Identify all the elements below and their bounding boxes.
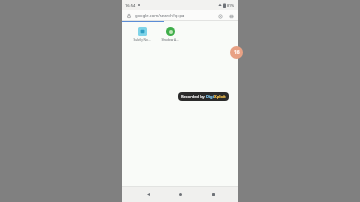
- button[interactable]: Floating badge: [230, 46, 243, 59]
- staticText: Shadow Art…: [161, 38, 179, 42]
- button[interactable]: Site information: [125, 12, 133, 20]
- staticText: 81%: [227, 3, 235, 8]
- button[interactable]: Tabs: [227, 12, 235, 20]
- button[interactable]: google.com/search?q=pa: [135, 13, 214, 19]
- staticText: google.com/search?q=pa: [135, 13, 185, 19]
- button[interactable]: Recent apps: [206, 187, 220, 201]
- button[interactable]: Home: [173, 187, 187, 201]
- staticText: Recorded by: [181, 94, 206, 99]
- button[interactable]: Back: [141, 187, 155, 201]
- staticText: 16:54: [125, 3, 136, 8]
- button[interactable]: Share: [216, 12, 224, 20]
- staticText: Subtly Note…: [133, 38, 151, 42]
- staticText: Xploit: [214, 94, 226, 99]
- staticText: Digi: [206, 94, 214, 99]
- button[interactable]: Subtly Note…: [133, 27, 151, 42]
- button[interactable]: Shadow Art…: [161, 27, 179, 42]
- staticText: 16: [234, 49, 240, 56]
